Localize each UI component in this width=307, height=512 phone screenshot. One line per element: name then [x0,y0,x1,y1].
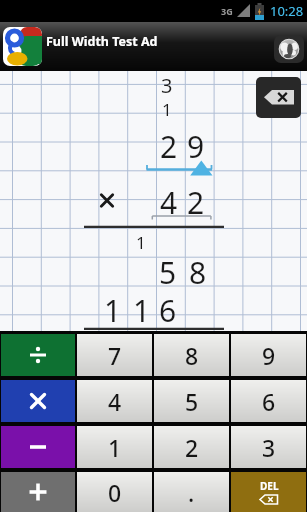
staticText: 3 [262,432,276,463]
staticText: 8 [189,252,207,293]
button[interactable]: 3 [231,426,306,468]
button[interactable]: 1 [77,426,152,468]
button[interactable]: 9 [231,334,306,376]
staticText: . [188,477,195,508]
staticText: 5 [159,252,177,293]
button[interactable]: 5 [154,380,229,422]
button[interactable]: 6 [231,380,306,422]
staticText: 7 [108,340,122,371]
staticText: 2 [187,182,205,223]
staticText: 1 [108,432,122,463]
button[interactable] [3,27,42,66]
staticText: 2 [185,432,199,463]
staticText: 5 [185,386,199,417]
button[interactable] [1,380,75,422]
staticText: 9 [187,126,205,167]
button[interactable] [1,426,75,468]
staticText: 4 [108,386,122,417]
button[interactable] [1,472,75,512]
staticText: 1 [133,290,151,331]
button[interactable]: 2 [154,426,229,468]
staticText: 6 [159,290,177,331]
staticText: 3 [161,72,173,99]
staticText: Full Width Test Ad [46,33,158,50]
button[interactable]: 0 [77,472,152,512]
staticText: 3G [221,5,233,17]
staticText: 4 [160,182,178,223]
staticText: 1 [136,231,146,254]
staticText: 0 [108,477,122,508]
button[interactable]: 7 [77,334,152,376]
staticText: 9 [262,340,276,371]
staticText: 1 [162,98,172,121]
staticText: DEL [260,479,279,493]
button[interactable]: DEL [231,472,306,512]
button[interactable]: 8 [154,334,229,376]
button[interactable] [256,77,301,118]
staticText: 1 [104,290,122,331]
button[interactable] [274,35,304,63]
staticText: 10:28 [270,2,304,20]
staticText: 8 [185,340,199,371]
button[interactable]: 4 [77,380,152,422]
staticText: 2 [160,126,178,167]
button[interactable]: . [154,472,229,512]
button[interactable]: Full Width Test Ad [0,22,307,71]
staticText: 6 [262,386,276,417]
button[interactable] [1,334,75,376]
